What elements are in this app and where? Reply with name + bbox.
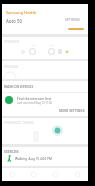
staticText: Walking Aug 15 4:06 PM — [15, 157, 52, 161]
staticText: Last connected Aug 13 11:02 — [17, 101, 52, 105]
staticText: EXERCISE — [4, 150, 19, 154]
staticText: WASH ON DEVICES — [4, 85, 34, 89]
staticText: Samsung Health — [6, 10, 37, 15]
staticText: YOUR MUSIC TRENDS — [4, 121, 34, 125]
staticText: 9,2k — [49, 43, 54, 46]
staticText: DISCOVER — [4, 65, 18, 69]
staticText: 1:05 — [31, 43, 36, 46]
staticText: Auto 50 — [6, 18, 22, 24]
button[interactable]: MORE SETTINGS — [59, 109, 85, 113]
staticText: Find the intercom first — [17, 96, 52, 100]
button[interactable]: SETTINGS — [65, 18, 80, 22]
button[interactable]: Find the intercom first — [2, 93, 88, 107]
staticText: TOGETHER — [4, 40, 19, 44]
